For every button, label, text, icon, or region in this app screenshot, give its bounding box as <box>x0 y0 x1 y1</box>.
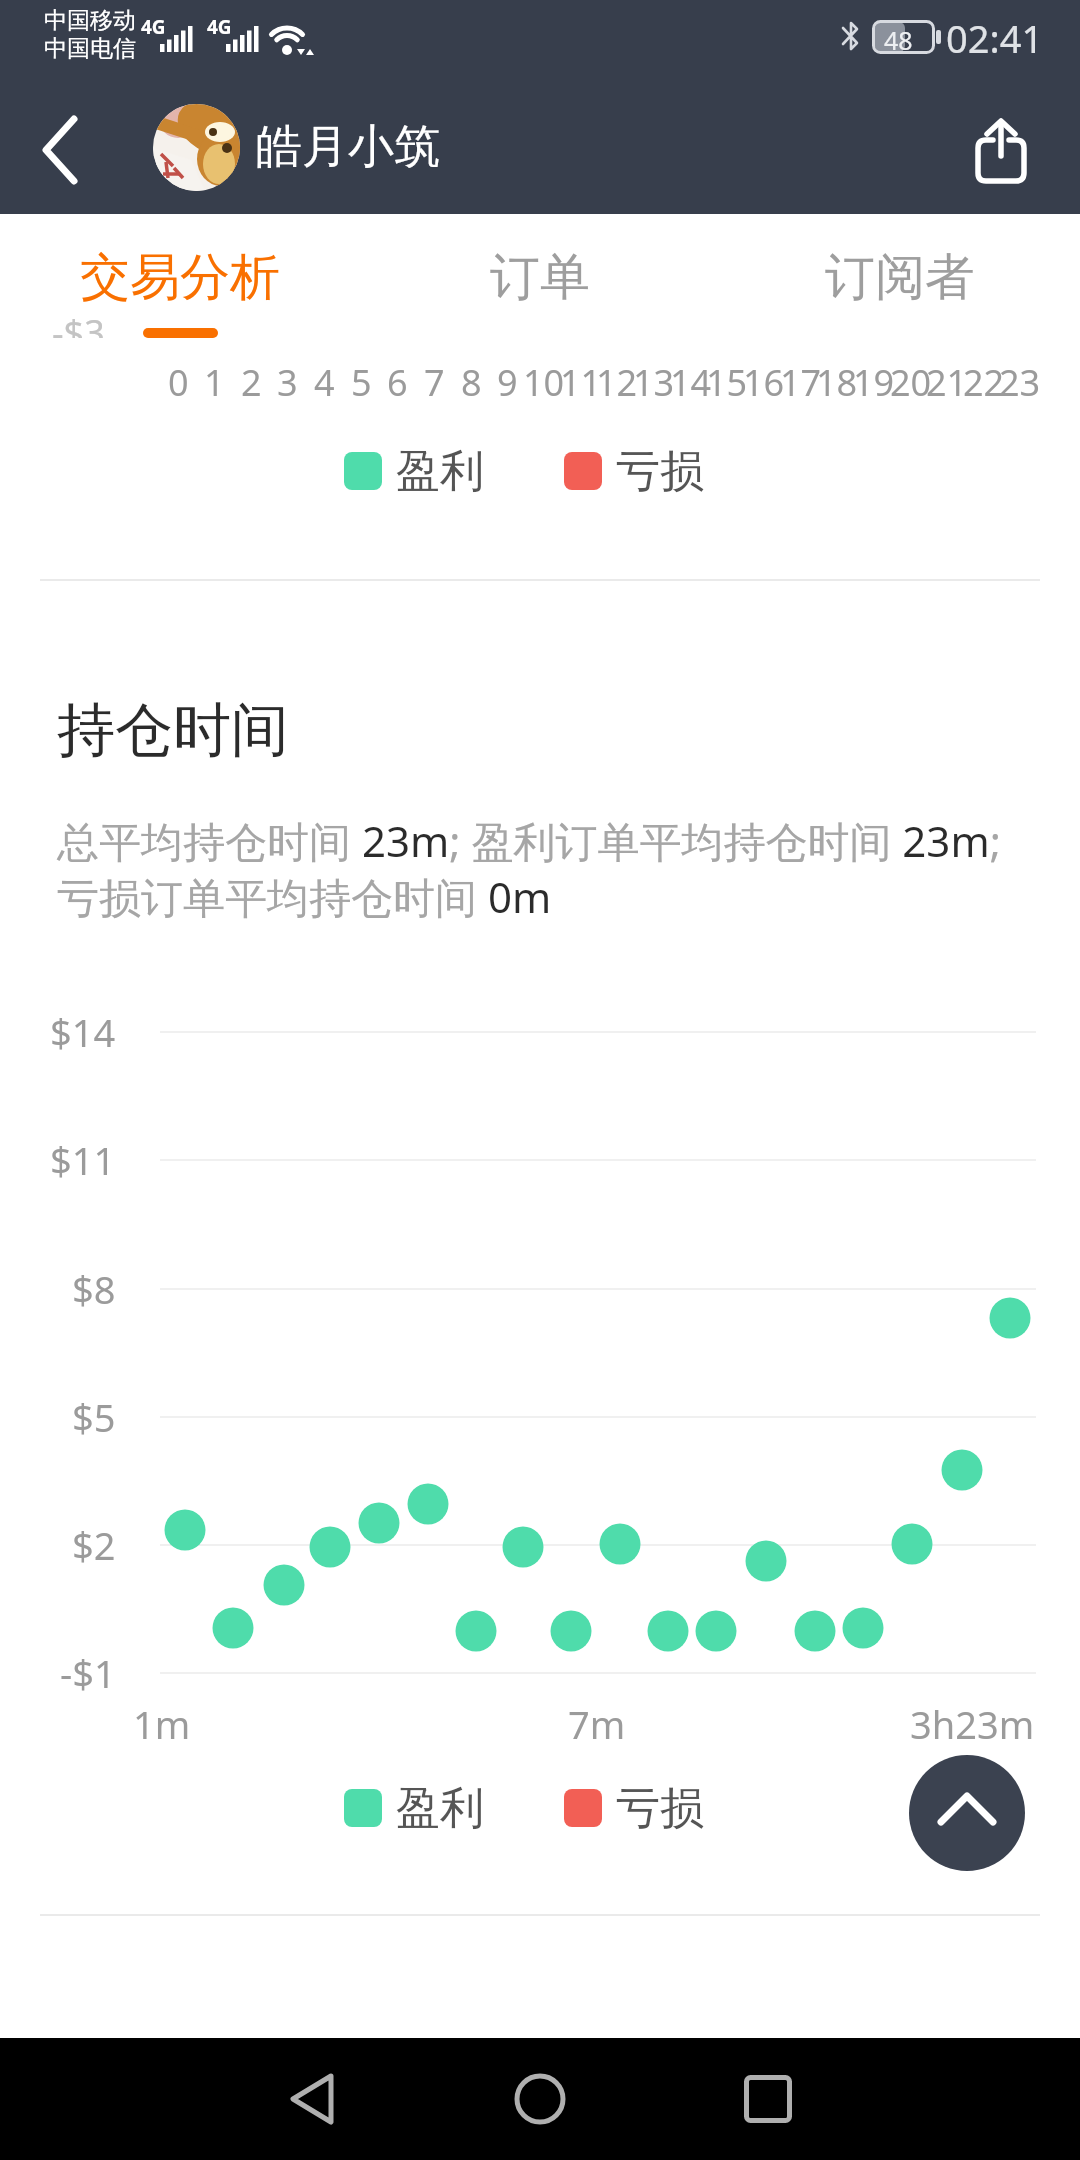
button[interactable] <box>955 100 1050 200</box>
staticText: 皓月小筑 <box>256 118 440 176</box>
staticText: 中国移动 <box>44 6 136 35</box>
staticText: 盈利 <box>396 444 484 499</box>
staticText: 19 <box>853 358 895 400</box>
staticText: 8 <box>461 358 482 400</box>
staticText: 订阅者 <box>825 246 975 309</box>
button[interactable] <box>153 104 240 191</box>
staticText: 订单 <box>490 246 590 309</box>
staticText: -$3 <box>52 317 105 338</box>
staticText: -$1 <box>60 1647 116 1699</box>
staticText: 4 <box>314 358 335 400</box>
button[interactable] <box>708 2041 828 2157</box>
button[interactable] <box>20 110 100 190</box>
staticText: 9 <box>497 358 518 400</box>
staticText: 7 <box>424 358 445 400</box>
button[interactable] <box>909 1755 1025 1871</box>
staticText: 持仓时间 <box>57 694 289 767</box>
staticText: $11 <box>50 1134 116 1186</box>
staticText: 11 <box>560 358 602 400</box>
staticText: 22 <box>963 358 1005 400</box>
button[interactable]: 订单 <box>360 240 720 315</box>
staticText: 亏损 <box>616 1781 704 1836</box>
staticText: 3h23m <box>910 1698 1035 1744</box>
staticText: 总平均持仓时间 23m; 盈利订单平均持仓时间 23m; <box>57 812 1001 869</box>
staticText: 4G <box>141 14 166 40</box>
staticText: 14 <box>670 358 712 400</box>
staticText: 18 <box>816 358 858 400</box>
staticText: 中国电信 <box>44 34 136 63</box>
button[interactable]: 订阅者 <box>720 240 1080 315</box>
button[interactable] <box>480 2041 600 2157</box>
staticText: 7m <box>568 1698 626 1744</box>
staticText: 02:41 <box>946 12 1044 64</box>
staticText: 10 <box>523 358 565 400</box>
staticText: 盈利 <box>396 1781 484 1836</box>
staticText: 21 <box>926 358 968 400</box>
staticText: $5 <box>72 1391 116 1443</box>
staticText: 17 <box>780 358 822 400</box>
staticText: 12 <box>596 358 638 400</box>
staticText: 1m <box>133 1698 191 1744</box>
staticText: 3 <box>277 358 298 400</box>
staticText: 4G <box>207 14 232 40</box>
staticText: 13 <box>633 358 675 400</box>
staticText: 20 <box>890 358 932 400</box>
staticText: 48 <box>884 23 913 57</box>
staticText: 亏损订单平均持仓时间 0m <box>57 868 552 925</box>
staticText: 23 <box>999 358 1041 400</box>
staticText: 16 <box>743 358 785 400</box>
staticText: $14 <box>50 1006 116 1058</box>
staticText: 2 <box>241 358 262 400</box>
staticText: 1 <box>204 358 225 400</box>
staticText: 亏损 <box>616 444 704 499</box>
staticText: 6 <box>387 358 408 400</box>
staticText: 0 <box>168 358 189 400</box>
staticText: 5 <box>351 358 372 400</box>
button[interactable] <box>252 2041 372 2157</box>
button[interactable]: 交易分析 <box>0 240 360 315</box>
staticText: 交易分析 <box>80 246 280 309</box>
staticText: $8 <box>72 1263 116 1315</box>
staticText: 15 <box>706 358 748 400</box>
staticText: $2 <box>72 1519 116 1571</box>
